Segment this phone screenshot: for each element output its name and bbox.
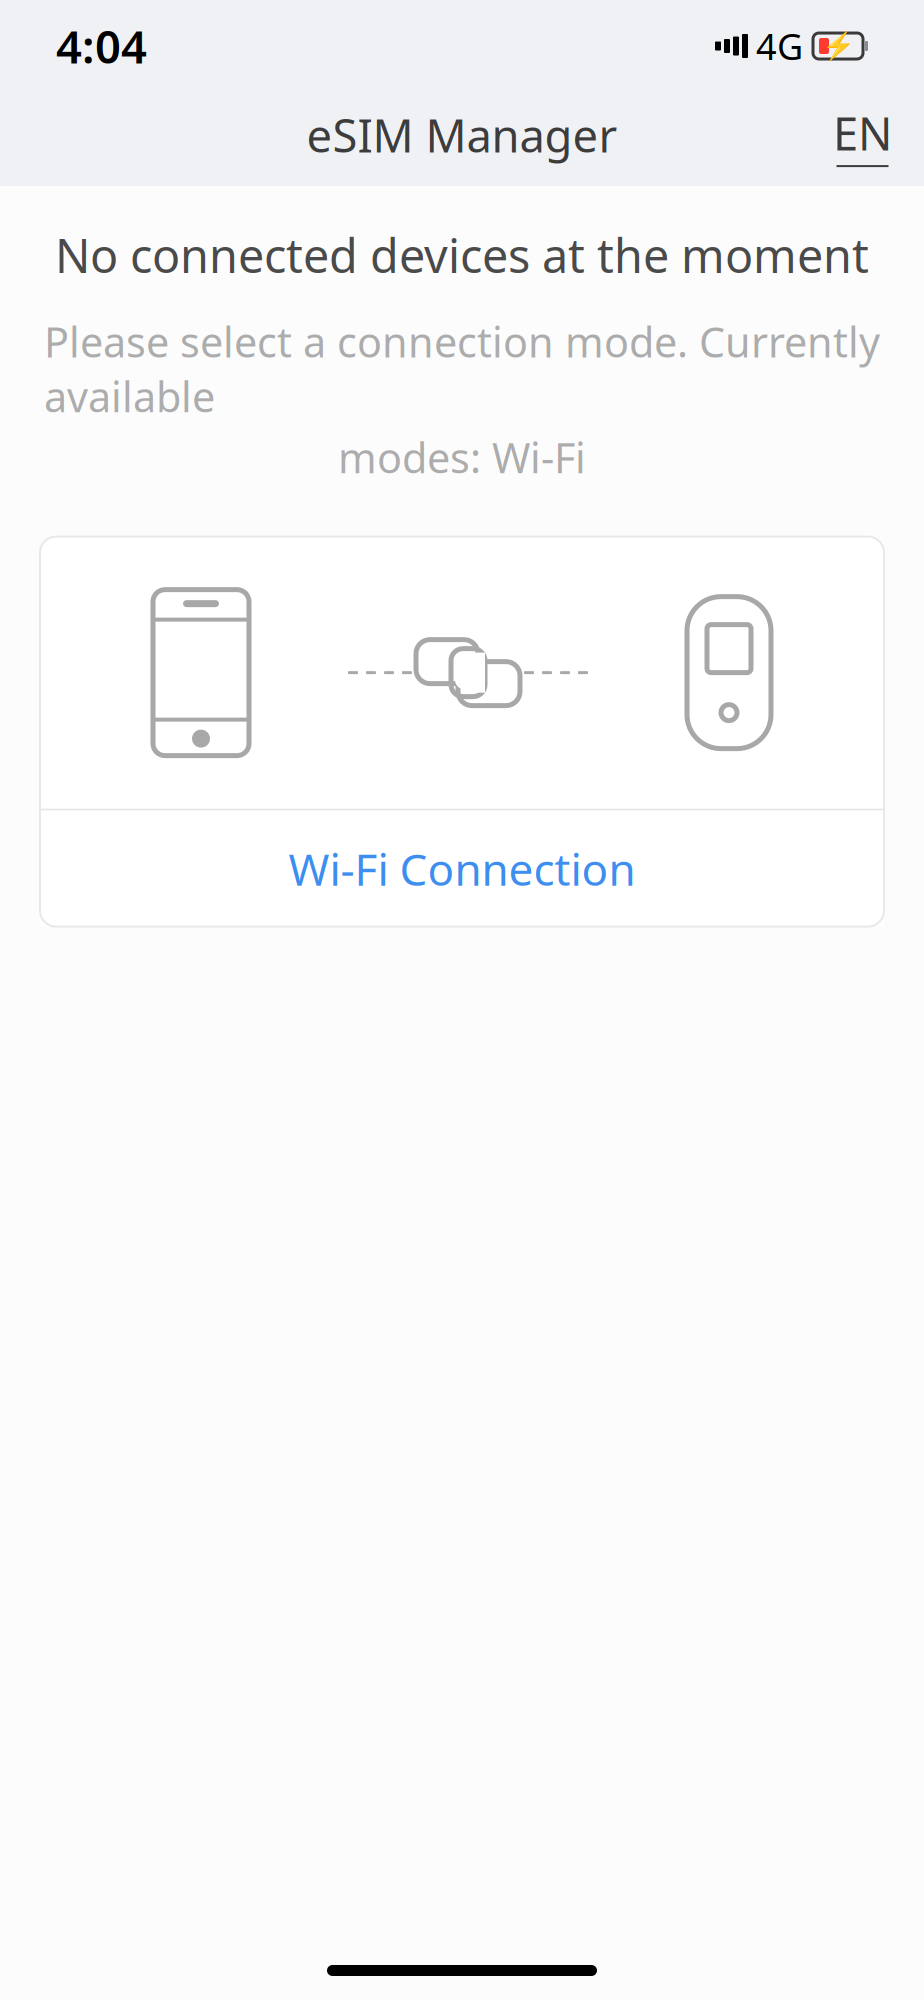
staticText: Please select a connection mode. Current… [44, 314, 880, 424]
staticText: ⚡ [821, 31, 854, 61]
button[interactable]: Wi-Fi Connection [40, 811, 884, 927]
staticText: EN [833, 103, 892, 163]
staticText: 4G [756, 22, 803, 70]
button[interactable]: EN [823, 95, 902, 175]
staticText: No connected devices at the moment [55, 224, 869, 286]
staticText: eSIM Manager [306, 105, 617, 165]
staticText: 4:04 [56, 16, 147, 76]
staticText: Wi-Fi Connection [288, 839, 635, 898]
staticText: modes: Wi-Fi [338, 430, 586, 485]
